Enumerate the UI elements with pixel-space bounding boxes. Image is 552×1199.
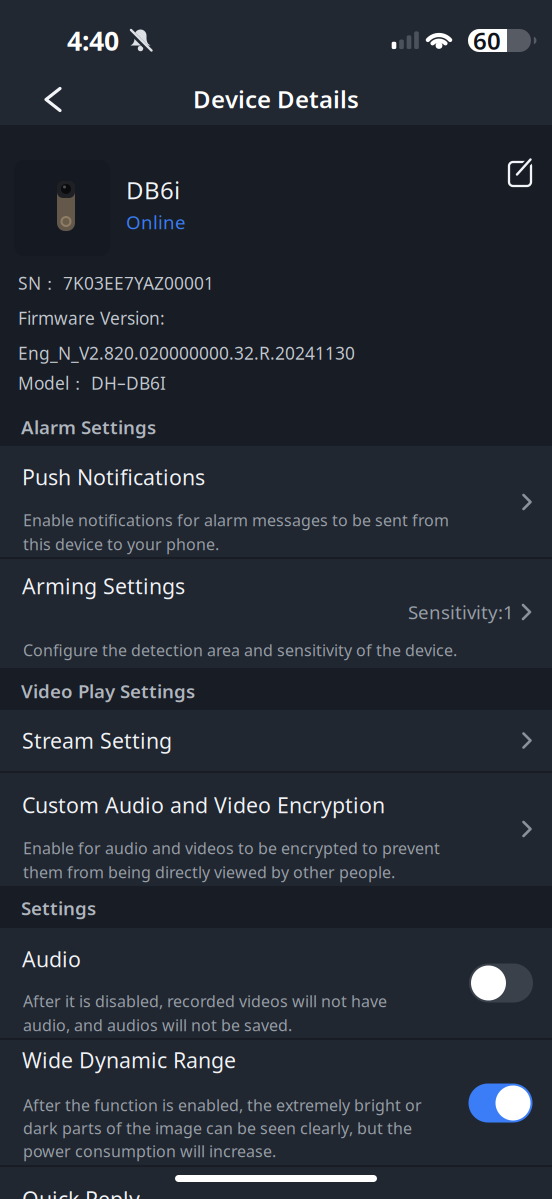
staticText: Audio (22, 945, 81, 973)
button[interactable]: Quick Reply (0, 1167, 552, 1199)
staticText: audio, and audios will not be saved. (23, 1014, 292, 1036)
staticText: 60 (473, 25, 501, 56)
button[interactable]: Stream Setting (0, 710, 552, 771)
button[interactable]: Custom Audio and Video Encryption (0, 773, 552, 886)
button[interactable]: Back (15, 77, 79, 121)
staticText: Custom Audio and Video Encryption (22, 791, 385, 819)
staticText: Model： DH–DB6I (18, 371, 166, 394)
button[interactable]: Wide Dynamic Range (468, 1083, 532, 1122)
staticText: Video Play Settings (21, 679, 195, 703)
staticText: Push Notifications (22, 463, 205, 491)
staticText: DB6i (126, 174, 180, 206)
staticText: Eng_N_V2.820.020000000.32.R.20241130 (18, 341, 355, 364)
staticText: Settings (21, 896, 96, 920)
staticText: them from being directly viewed by other… (23, 861, 395, 883)
staticText: Wide Dynamic Range (22, 1046, 236, 1074)
staticText: this device to your phone. (23, 533, 219, 555)
staticText: dark parts of the image can be seen clea… (23, 1117, 412, 1139)
staticText: Enable notifications for alarm messages … (23, 509, 449, 531)
button[interactable]: Arming Settings (0, 559, 552, 668)
staticText: Online (126, 210, 186, 234)
staticText: power consumption will increase. (23, 1140, 276, 1162)
staticText: Arming Settings (22, 572, 185, 600)
staticText: Stream Setting (22, 726, 172, 755)
staticText: After it is disabled, recorded videos wi… (23, 990, 387, 1012)
staticText: Sensitivity:1 (408, 600, 514, 624)
staticText: After the function is enabled, the extre… (23, 1094, 422, 1116)
staticText: SN： 7K03EE7YAZ00001 (18, 271, 214, 294)
button[interactable]: Audio (469, 963, 533, 1002)
staticText: Device Details (193, 83, 359, 115)
staticText: Enable for audio and videos to be encryp… (23, 837, 440, 859)
staticText: Configure the detection area and sensiti… (23, 639, 457, 661)
button[interactable]: Push Notifications (0, 446, 552, 557)
staticText: 4:40 (67, 23, 119, 58)
button[interactable]: Edit device name (505, 158, 537, 190)
staticText: Quick Reply (22, 1185, 140, 1199)
staticText: Firmware Version: (18, 306, 165, 329)
staticText: Alarm Settings (21, 415, 156, 439)
